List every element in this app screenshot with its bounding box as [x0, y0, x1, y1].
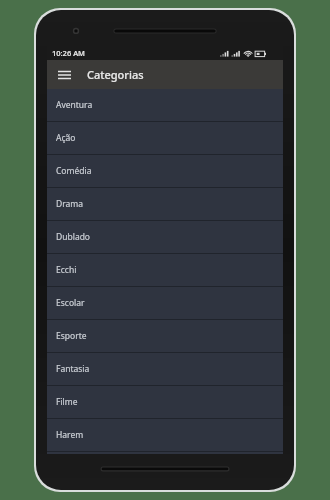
staticText: Ecchi [56, 264, 77, 276]
staticText: Filme [56, 396, 78, 408]
staticText: Drama [56, 198, 84, 210]
staticText: Escolar [56, 297, 85, 309]
staticText: Harem [56, 429, 84, 441]
button[interactable]: Ação [47, 122, 283, 154]
staticText: Dublado [56, 231, 91, 243]
button[interactable]: Harem [47, 419, 283, 451]
staticText: Fantasia [56, 363, 90, 375]
staticText: Ação [56, 132, 76, 144]
button[interactable]: Open navigation menu [47, 60, 81, 89]
staticText: Categorias [87, 67, 144, 82]
button[interactable]: Drama [47, 188, 283, 220]
staticText: Esporte [56, 330, 87, 342]
staticText: 10:26 AM [52, 48, 85, 58]
staticText: Aventura [56, 99, 93, 111]
button[interactable]: Aventura [47, 89, 283, 121]
button[interactable]: Ecchi [47, 254, 283, 286]
button[interactable]: Escolar [47, 287, 283, 319]
button[interactable]: Comédia [47, 155, 283, 187]
staticText: Comédia [56, 165, 92, 177]
button[interactable]: Dublado [47, 221, 283, 253]
button[interactable]: Fantasia [47, 353, 283, 385]
button[interactable]: Filme [47, 386, 283, 418]
button[interactable]: Esporte [47, 320, 283, 352]
